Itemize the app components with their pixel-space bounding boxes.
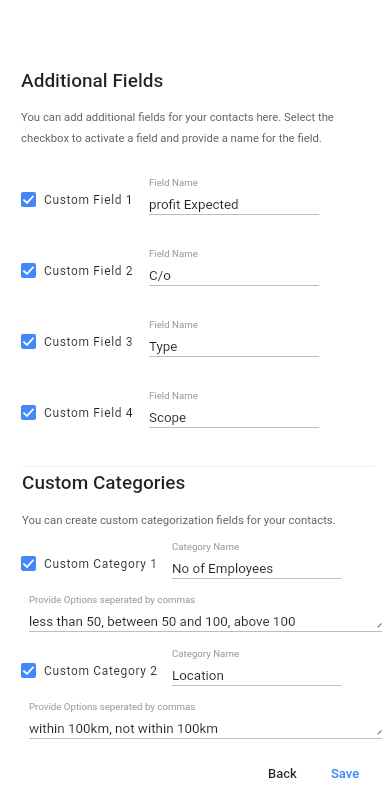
staticText: C/o <box>149 268 171 284</box>
button[interactable]: Custom Field 1 <box>21 192 134 207</box>
button[interactable]: Field Name <box>149 248 319 286</box>
staticText: Custom Field 2 <box>44 264 134 278</box>
button[interactable]: Category Name <box>172 541 341 579</box>
button[interactable]: Provide Options seperated by commas <box>29 594 382 632</box>
button[interactable]: Custom Field 4 <box>21 405 134 420</box>
button[interactable]: Custom Category 2 <box>21 663 158 678</box>
staticText: Location <box>172 668 224 684</box>
button[interactable]: Category Name <box>172 648 341 686</box>
staticText: Custom Field 1 <box>44 193 134 207</box>
button[interactable]: Back <box>258 758 307 789</box>
staticText: Additional Fields <box>21 69 164 91</box>
staticText: Custom Field 4 <box>44 406 134 420</box>
button[interactable]: Save <box>321 758 370 789</box>
staticText: Field Name <box>149 390 198 401</box>
staticText: Field Name <box>149 319 198 330</box>
staticText: Back <box>268 766 297 781</box>
button[interactable]: Custom Field 3 <box>21 334 134 349</box>
staticText: Field Name <box>149 248 198 259</box>
staticText: Provide Options seperated by commas <box>29 701 196 712</box>
staticText: Custom Category 2 <box>44 664 158 678</box>
staticText: within 100km, not within 100km <box>29 721 218 737</box>
staticText: profit Expected <box>149 197 239 213</box>
staticText: Category Name <box>172 541 240 552</box>
button[interactable]: Field Name <box>149 319 319 357</box>
staticText: Custom Categories <box>22 471 186 493</box>
staticText: Custom Category 1 <box>44 557 158 571</box>
staticText: Field Name <box>149 177 198 188</box>
staticText: Custom Field 3 <box>44 335 134 349</box>
staticText: You can create custom categorization fie… <box>22 513 336 526</box>
button[interactable]: Custom Category 1 <box>21 556 158 571</box>
staticText: Save <box>331 766 360 781</box>
button[interactable]: Provide Options seperated by commas <box>29 701 382 739</box>
staticText: Scope <box>149 410 187 426</box>
button[interactable]: Field Name <box>149 177 319 215</box>
staticText: You can add additional fields for your c… <box>21 111 334 144</box>
button[interactable]: Custom Field 2 <box>21 263 134 278</box>
button[interactable]: Field Name <box>149 390 319 428</box>
staticText: less than 50, between 50 and 100, above … <box>29 614 296 630</box>
staticText: Provide Options seperated by commas <box>29 594 196 605</box>
staticText: Category Name <box>172 648 240 659</box>
staticText: Type <box>149 339 178 355</box>
staticText: No of Employees <box>172 561 274 577</box>
